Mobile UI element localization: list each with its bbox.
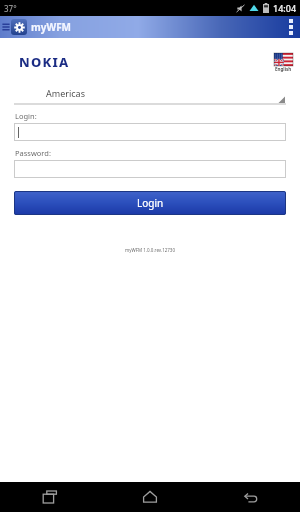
staticText: Americas	[46, 87, 85, 99]
staticText: 37°	[4, 3, 17, 14]
staticText: Login	[137, 196, 164, 210]
staticText: Login:	[15, 111, 37, 121]
staticText: English	[275, 66, 292, 72]
button[interactable]: Recent apps	[0, 482, 100, 512]
staticText: NOKIA	[19, 53, 70, 71]
button[interactable]	[14, 160, 286, 178]
button[interactable]: Change language, English	[274, 53, 293, 72]
button[interactable]: Back	[200, 482, 300, 512]
staticText: 14:04	[273, 2, 297, 14]
button[interactable]: Americas	[14, 86, 286, 105]
button[interactable]: Login	[14, 191, 286, 215]
staticText: myWFM	[31, 20, 72, 34]
button[interactable]: Open navigation drawer	[0, 16, 75, 38]
button[interactable]	[14, 123, 286, 141]
button[interactable]: More options	[282, 16, 300, 38]
staticText: myWFM 1.0.0.rev.12730	[0, 247, 300, 253]
button[interactable]: Home	[100, 482, 200, 512]
staticText: Password:	[15, 148, 51, 158]
